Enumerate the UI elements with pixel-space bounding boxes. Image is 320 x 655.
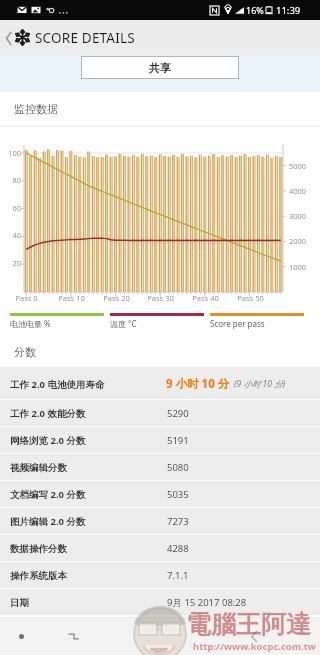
button[interactable]: 工作 2.0 效能分数 [0, 400, 320, 426]
staticText: 2000 [289, 236, 307, 246]
staticText: 温度 °C [110, 318, 137, 329]
button[interactable]: 共享 [81, 56, 239, 79]
button[interactable]: Recent apps [61, 618, 85, 655]
button[interactable]: Back [242, 618, 266, 655]
staticText: 60 [12, 203, 21, 213]
staticText: 7273 [167, 515, 189, 528]
staticText: 数据操作分数 [10, 543, 67, 555]
staticText: Pass 30 [147, 293, 174, 303]
staticText: 16% [246, 4, 264, 16]
button[interactable]: 日期 [0, 589, 320, 615]
button[interactable]: 数据操作分数 [0, 535, 320, 561]
staticText: 5080 [167, 461, 189, 474]
staticText: 4000 [289, 186, 307, 196]
staticText: 9 小时 10 分 [166, 376, 230, 392]
staticText: 操作系统版本 [10, 570, 67, 582]
staticText: 100 [8, 148, 21, 158]
staticText: 7.1.1 [167, 569, 189, 582]
staticText: 電腦王阿達 [186, 609, 311, 640]
staticText: Pass 20 [103, 293, 130, 303]
staticText: 日期 [10, 597, 29, 609]
button[interactable]: 操作系统版本 [0, 562, 320, 588]
staticText: 40 [12, 230, 21, 240]
staticText: 5035 [167, 488, 189, 501]
staticText: (9 小时 10 分) [234, 378, 286, 390]
staticText: 电池电量 % [10, 318, 51, 329]
staticText: 工作 2.0 电池使用寿命 [10, 378, 105, 391]
staticText: 5000 [289, 161, 307, 171]
staticText: 11:39 [276, 4, 301, 17]
staticText: 3000 [289, 211, 307, 221]
staticText: 9月 15 2017 08:28 [167, 596, 247, 609]
button[interactable]: 工作 2.0 电池使用寿命 [0, 368, 320, 399]
staticText: 5191 [167, 434, 189, 447]
staticText: 视频编辑分数 [10, 462, 67, 474]
staticText: 文档编写 2.0 分数 [10, 488, 86, 501]
staticText: SCORE DETAILS [35, 29, 135, 47]
staticText: 1000 [289, 262, 307, 272]
button[interactable]: 文档编写 2.0 分数 [0, 481, 320, 507]
button[interactable]: 视频编辑分数 [0, 454, 320, 480]
staticText: 20 [12, 258, 21, 268]
staticText: 5290 [167, 407, 189, 420]
staticText: Score per pass [210, 318, 265, 329]
staticText: Pass 0 [15, 293, 38, 303]
staticText: 网络浏览 2.0 分数 [10, 434, 86, 447]
button[interactable]: Back [3, 23, 15, 53]
staticText: 工作 2.0 效能分数 [10, 407, 86, 420]
staticText: 图片编辑 2.0 分数 [10, 515, 86, 528]
button[interactable]: Home [9, 618, 33, 655]
staticText: 80 [12, 175, 21, 185]
staticText: Pass 40 [192, 293, 219, 303]
staticText: Pass 10 [58, 293, 85, 303]
staticText: Pass 50 [237, 293, 264, 303]
staticText: http://www.kocpc.com.tw [193, 640, 316, 653]
staticText: 分数 [14, 345, 36, 359]
staticText: 监控数据 [14, 102, 58, 116]
button[interactable]: 网络浏览 2.0 分数 [0, 427, 320, 453]
staticText: 4288 [167, 542, 189, 555]
button[interactable]: 图片编辑 2.0 分数 [0, 508, 320, 534]
staticText: 共享 [149, 61, 171, 75]
